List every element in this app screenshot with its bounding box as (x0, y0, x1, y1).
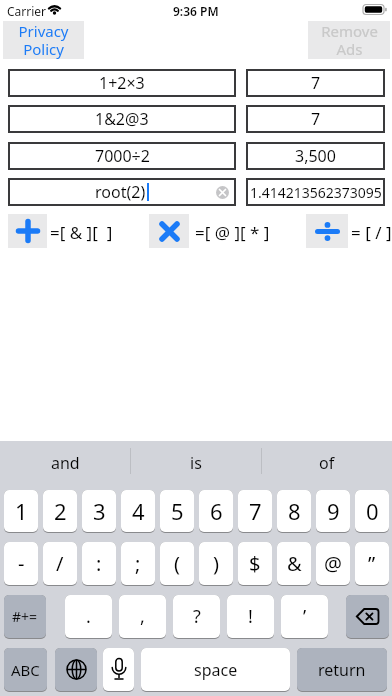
staticText: =[ & ][ ] (50, 221, 113, 244)
staticText: 4 (132, 496, 145, 526)
staticText: 0 (366, 496, 379, 526)
button[interactable]: @ (316, 542, 350, 585)
button[interactable] (103, 648, 134, 691)
button[interactable]: 7000÷2 (8, 142, 236, 170)
staticText: Remove Ads (321, 21, 378, 59)
button[interactable]: 2 (43, 490, 77, 532)
staticText: 9:36 PM (173, 3, 219, 19)
staticText: ! (248, 604, 253, 629)
staticText: of (319, 452, 335, 474)
staticText: Privacy Policy (18, 21, 69, 59)
staticText: $ (249, 550, 261, 577)
staticText: root(2) (95, 181, 146, 203)
button[interactable]: and (0, 441, 130, 485)
staticText: , (140, 604, 145, 629)
button[interactable]: space (141, 648, 290, 691)
staticText: 9 (327, 496, 340, 526)
button[interactable]: 5 (160, 490, 194, 532)
staticText: return (318, 659, 366, 681)
staticText: 7 (311, 72, 321, 94)
staticText: 3,500 (295, 145, 336, 167)
button[interactable]: of (262, 441, 392, 485)
button[interactable]: return (297, 648, 387, 691)
button[interactable]: $ (238, 542, 272, 585)
staticText: and (51, 452, 80, 474)
staticText: & (287, 550, 302, 577)
button[interactable]: ? (173, 595, 220, 638)
staticText: @ (324, 550, 342, 577)
button[interactable]: ) (199, 542, 233, 585)
staticText: #+= (12, 607, 38, 626)
button[interactable] (8, 214, 47, 248)
button[interactable]: 3 (82, 490, 116, 532)
staticText: ) (213, 550, 219, 577)
button[interactable]: 4 (121, 490, 155, 532)
button[interactable]: #+= (4, 595, 46, 638)
button[interactable]: Privacy Policy (3, 21, 84, 59)
staticText: 5 (171, 496, 184, 526)
staticText: : (96, 550, 102, 577)
button[interactable]: 7 (238, 490, 272, 532)
button[interactable]: ; (121, 542, 155, 585)
staticText: Carrier (7, 3, 47, 19)
staticText: ? (193, 604, 201, 629)
button[interactable]: - (4, 542, 38, 585)
button[interactable] (346, 595, 389, 638)
button[interactable]: , (119, 595, 166, 638)
button[interactable]: 6 (199, 490, 233, 532)
button[interactable]: ABC (4, 648, 47, 691)
button[interactable]: & (277, 542, 311, 585)
staticText: 3 (93, 496, 106, 526)
button[interactable]: 3,500 (246, 142, 385, 170)
button[interactable]: 1&2@3 (8, 105, 236, 133)
button[interactable] (149, 214, 189, 248)
button[interactable]: 0 (355, 490, 389, 532)
staticText: ’ (303, 604, 307, 629)
staticText: 7 (311, 108, 321, 130)
button[interactable]: root(2) (8, 178, 236, 206)
button[interactable]: is (131, 441, 261, 485)
staticText: . (86, 604, 91, 629)
button[interactable]: 1+2×3 (8, 69, 236, 97)
button[interactable] (306, 214, 348, 248)
button[interactable]: 9 (316, 490, 350, 532)
staticText: 1+2×3 (99, 72, 145, 94)
staticText: 1 (15, 496, 28, 526)
button[interactable]: / (43, 542, 77, 585)
staticText: 7 (249, 496, 262, 526)
button[interactable]: 7 (246, 69, 385, 97)
button[interactable]: . (65, 595, 112, 638)
staticText: space (194, 659, 238, 681)
button[interactable]: 8 (277, 490, 311, 532)
button[interactable]: Remove Ads (308, 21, 390, 59)
staticText: ABC (11, 660, 40, 680)
button[interactable]: : (82, 542, 116, 585)
staticText: 7000÷2 (95, 145, 150, 167)
staticText: 2 (54, 496, 67, 526)
button[interactable] (55, 648, 97, 691)
button[interactable]: ( (160, 542, 194, 585)
staticText: / (56, 550, 64, 577)
staticText: ( (174, 550, 180, 577)
staticText: ; (135, 550, 141, 577)
staticText: 6 (210, 496, 223, 526)
button[interactable]: ! (227, 595, 274, 638)
staticText: - (18, 550, 25, 577)
staticText: 1&2@3 (95, 108, 149, 130)
staticText: 8 (288, 496, 301, 526)
button[interactable]: 1.414213562373095 (246, 178, 385, 206)
button[interactable]: 7 (246, 105, 385, 133)
staticText: is (190, 452, 202, 474)
button[interactable]: 1 (4, 490, 38, 532)
button[interactable]: ” (355, 542, 389, 585)
staticText: 1.414213562373095 (250, 183, 382, 202)
staticText: =[ @ ][ * ] (195, 221, 270, 244)
staticText: = [ / ] (351, 221, 392, 244)
staticText: ” (368, 550, 376, 577)
button[interactable]: ’ (281, 595, 328, 638)
